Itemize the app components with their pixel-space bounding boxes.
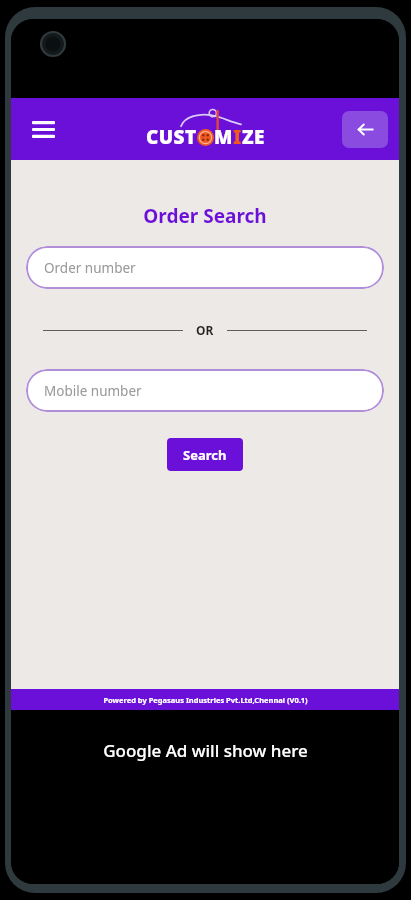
button[interactable]: Mobile number [26, 369, 384, 412]
staticText: OR [196, 322, 214, 338]
button[interactable]: Menu [23, 109, 63, 149]
staticText: Search [183, 446, 227, 464]
staticText: Order Search [11, 203, 399, 229]
staticText: Mobile number [44, 382, 142, 400]
staticText: I [233, 124, 242, 150]
staticText: Order number [44, 259, 136, 277]
staticText: Powered by Pegasaus Industries Pvt.Ltd,C… [103, 695, 308, 705]
staticText: M [214, 124, 233, 150]
button[interactable]: Order number [26, 246, 384, 289]
staticText: Google Ad will show here [103, 739, 308, 762]
button[interactable]: Search [167, 438, 243, 471]
staticText: CUST [146, 124, 197, 150]
button[interactable]: Back [342, 111, 388, 148]
staticText: ZE [242, 124, 265, 150]
